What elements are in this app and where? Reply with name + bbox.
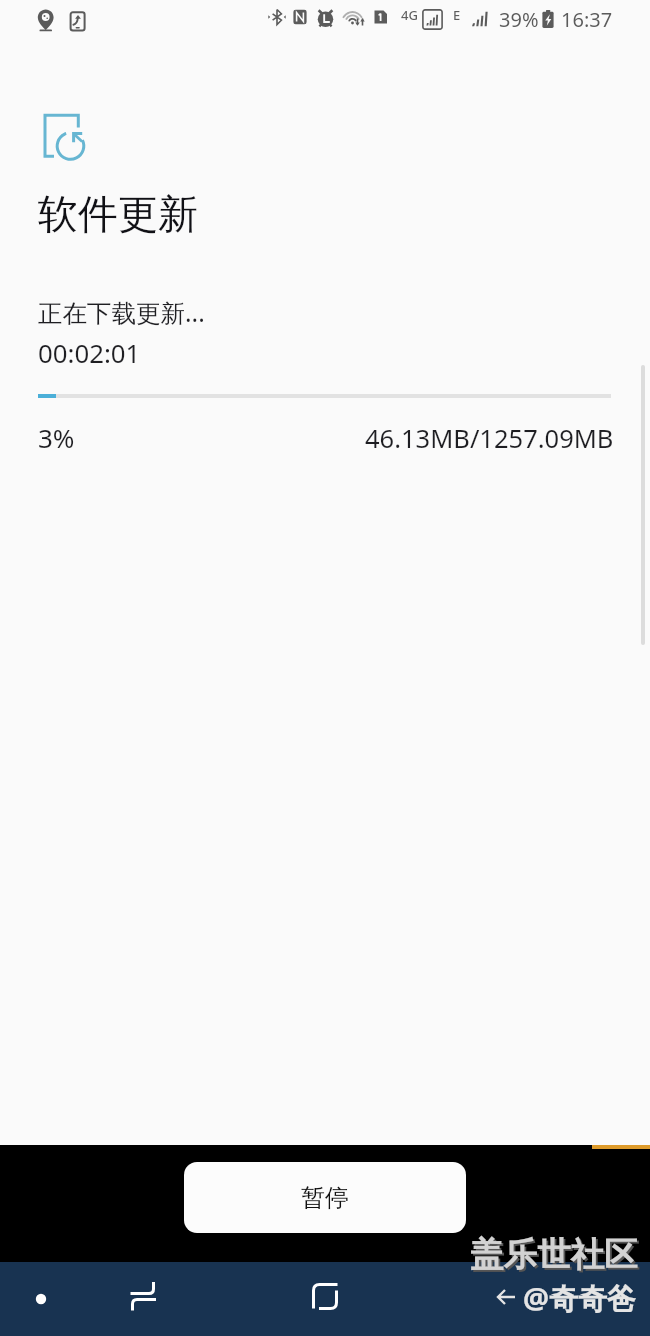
button[interactable]: 暂停 xyxy=(184,1162,466,1233)
staticText: 暂停 xyxy=(301,1183,349,1213)
staticText: 39% xyxy=(499,6,539,33)
button[interactable]: Home xyxy=(297,1268,353,1324)
staticText: 16:37 xyxy=(561,6,613,33)
button[interactable]: Recent apps xyxy=(117,1268,173,1324)
staticText: @奇奇爸 xyxy=(523,1278,637,1318)
staticText: 46.13MB/1257.09MB xyxy=(365,421,614,456)
staticText: 4G xyxy=(401,6,418,24)
staticText: 00:02:01 xyxy=(38,335,141,370)
button[interactable]: Keyboard xyxy=(13,1271,69,1327)
staticText: E xyxy=(453,6,461,24)
staticText: 软件更新 xyxy=(38,189,198,239)
staticText: 盖乐世社区 xyxy=(472,1236,640,1278)
staticText: 3% xyxy=(38,420,75,455)
staticText: 盖乐世社区 xyxy=(470,1234,638,1276)
staticText: 正在下载更新... xyxy=(38,296,205,329)
